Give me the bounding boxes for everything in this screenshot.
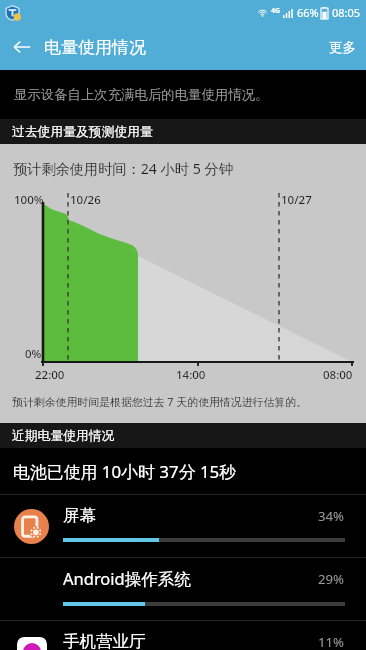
staticText: 更多	[329, 39, 356, 56]
staticText: 0%	[25, 346, 42, 362]
staticText: 近期电量使用情况	[12, 428, 115, 444]
staticText: 11%	[318, 633, 345, 650]
button[interactable]: 返回	[0, 25, 44, 69]
staticText: 10/27	[281, 192, 312, 208]
staticText: Android操作系统	[63, 567, 191, 590]
staticText: 29%	[318, 570, 345, 588]
staticText: 10/26	[70, 192, 101, 208]
staticText: 电池已使用 10小时 37分 15秒	[13, 460, 237, 483]
staticText: 08:05	[332, 5, 361, 20]
button[interactable]: 更多	[315, 24, 366, 70]
staticText: 电量使用情况	[44, 37, 146, 58]
staticText: 08:00	[323, 367, 353, 383]
staticText: 22:00	[35, 367, 65, 383]
staticText: 34%	[318, 507, 345, 525]
button[interactable]: 手机营业厅	[0, 621, 366, 650]
staticText: 100%	[14, 192, 44, 208]
button[interactable]: Android操作系统	[0, 558, 366, 620]
staticText: 66%	[297, 5, 319, 20]
staticText: 显示设备自上次充满电后的电量使用情况。	[14, 86, 366, 103]
staticText: 预计剩余使用时间：24 小时 5 分钟	[13, 159, 233, 178]
button[interactable]: 屏幕	[0, 495, 366, 557]
staticText: 屏幕	[63, 505, 96, 526]
staticText: 手机营业厅	[63, 631, 146, 650]
staticText: 14:00	[176, 367, 206, 383]
staticText: 过去使用量及预测使用量	[12, 124, 153, 140]
staticText: 4G	[271, 6, 281, 16]
staticText: 预计剩余使用时间是根据您过去 7 天的使用情况进行估算的。	[12, 394, 308, 409]
